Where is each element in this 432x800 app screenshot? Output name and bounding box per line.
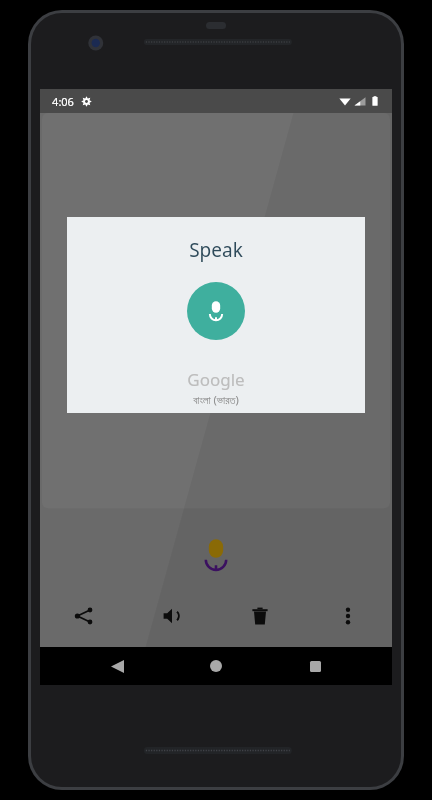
staticText: 4:06 <box>52 94 74 109</box>
button[interactable]: Delete <box>238 594 282 638</box>
button[interactable]: Speak <box>67 217 365 413</box>
button[interactable]: Start voice input <box>187 282 245 340</box>
button[interactable]: Microphone <box>194 533 238 577</box>
button[interactable]: Play audio <box>150 594 194 638</box>
button[interactable]: More options <box>326 594 370 638</box>
staticText: বাংলা (ভারত) <box>193 392 239 407</box>
button[interactable]: Back <box>95 647 139 685</box>
staticText: Speak <box>189 237 243 263</box>
button[interactable]: Recent apps <box>293 647 337 685</box>
button[interactable]: Share <box>62 594 106 638</box>
staticText: Google <box>187 368 245 391</box>
button[interactable]: Home <box>194 647 238 685</box>
